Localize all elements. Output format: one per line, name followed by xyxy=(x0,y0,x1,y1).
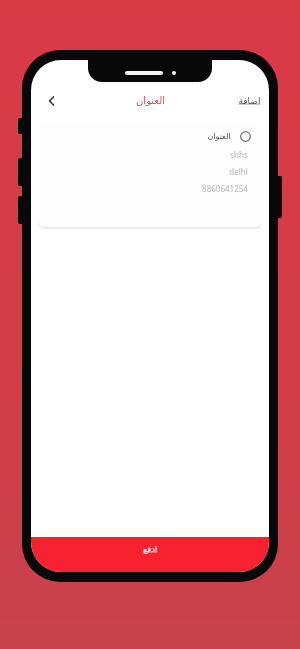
button[interactable]: العنوان xyxy=(38,123,262,227)
staticText: العنوان xyxy=(136,95,165,107)
button[interactable]: Back xyxy=(39,88,65,114)
staticText: العنوان xyxy=(207,132,231,141)
button[interactable]: اضافة xyxy=(238,96,261,106)
staticText: delhi xyxy=(229,166,248,177)
staticText: shhs xyxy=(230,149,248,160)
staticText: اضافة xyxy=(238,96,261,106)
other: Select address xyxy=(240,131,251,142)
button[interactable]: ادفع xyxy=(31,537,269,572)
staticText: 8860641254 xyxy=(202,183,248,194)
staticText: ادفع xyxy=(143,545,157,554)
